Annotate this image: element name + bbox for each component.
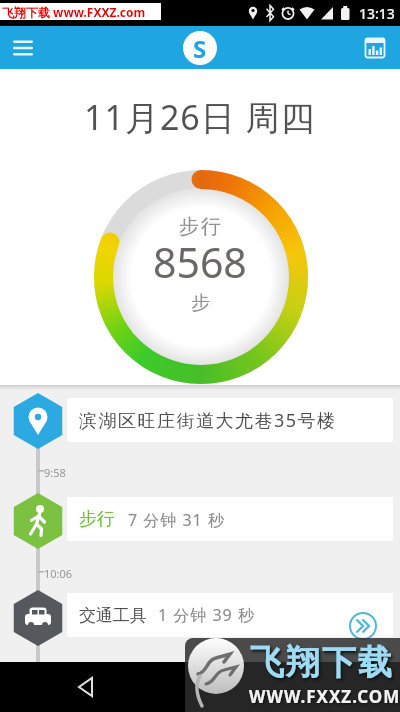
staticText: 步行 — [178, 214, 222, 239]
staticText: S — [193, 32, 207, 65]
staticText: 7 分钟 31 秒 — [128, 509, 225, 531]
staticText: 8568 — [153, 234, 247, 290]
button[interactable] — [66, 667, 106, 707]
staticText: 10:06 — [44, 566, 73, 581]
staticText: 1 分钟 39 秒 — [158, 604, 255, 626]
staticText: 交通工具 — [79, 605, 147, 626]
button[interactable] — [349, 612, 377, 640]
button[interactable] — [360, 33, 390, 63]
staticText: WWW.FXXZ.COM — [249, 685, 400, 708]
staticText: 步行 — [79, 508, 115, 531]
staticText: 飞翔下载 — [249, 641, 393, 684]
button[interactable]: 步行 — [67, 497, 393, 541]
button[interactable]: 滨湖区旺庄街道大尤巷35号楼 — [67, 398, 393, 442]
button[interactable]: 交通工具 — [67, 593, 393, 637]
staticText: 飞翔下载 www.FXXZ.com — [2, 4, 146, 20]
button[interactable] — [8, 33, 38, 63]
staticText: 步 — [191, 291, 210, 315]
staticText: 11月26日 周四 — [84, 94, 316, 140]
staticText: 滨湖区旺庄街道大尤巷35号楼 — [79, 408, 337, 433]
staticText: 9:58 — [44, 465, 66, 480]
staticText: 13:13 — [359, 4, 395, 23]
